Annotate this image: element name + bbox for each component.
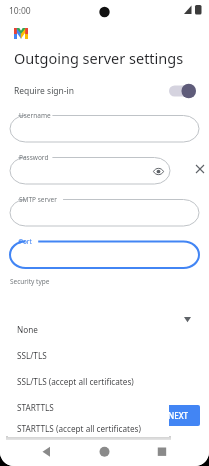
button[interactable]: STARTTLS xyxy=(8,394,169,420)
staticText: 10:00 xyxy=(9,5,31,17)
button[interactable] xyxy=(169,84,196,98)
staticText: Password xyxy=(19,153,49,162)
staticText: NEXT xyxy=(168,410,189,421)
staticText: Require sign-in xyxy=(14,85,75,97)
button[interactable]: NEXT xyxy=(157,405,200,426)
button[interactable]: Username xyxy=(10,111,199,142)
staticText: Username xyxy=(19,111,51,120)
button[interactable]: Clear password xyxy=(190,153,209,184)
staticText: STARTTLS (accept all certificates) xyxy=(17,423,141,434)
button[interactable]: None xyxy=(8,316,169,342)
staticText: Security type xyxy=(10,277,50,286)
staticText: STARTTLS xyxy=(17,402,54,413)
button[interactable]: Show password xyxy=(150,163,166,179)
staticText: None xyxy=(17,324,38,335)
button[interactable]: Port xyxy=(10,237,199,268)
button[interactable]: STARTTLS (accept all certificates) xyxy=(8,420,169,437)
staticText: SSL/TLS xyxy=(17,350,47,361)
staticText: Outgoing server settings xyxy=(14,48,184,68)
button[interactable]: SSL/TLS (accept all certificates) xyxy=(8,368,169,394)
button[interactable]: Require sign-in xyxy=(0,79,209,103)
button[interactable]: SMTP server xyxy=(10,195,199,226)
staticText: SMTP server xyxy=(19,195,57,204)
button[interactable]: SSL/TLS xyxy=(8,342,169,368)
staticText: Port xyxy=(19,237,32,246)
staticText: SSL/TLS (accept all certificates) xyxy=(17,376,134,387)
